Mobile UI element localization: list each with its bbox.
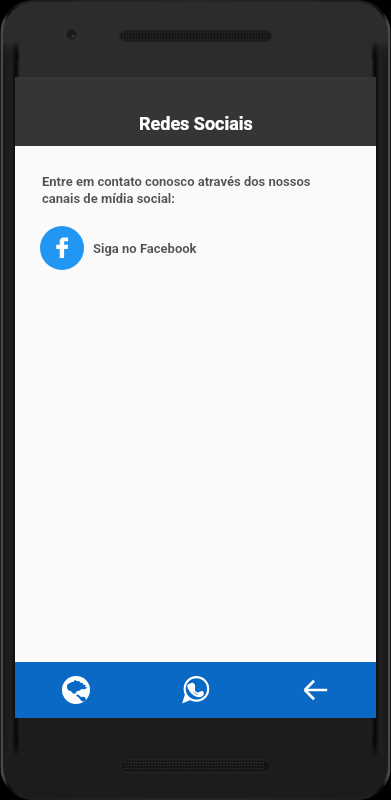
staticText: Entre em contato conosco através dos nos… [42, 174, 332, 207]
button[interactable]: Website [15, 662, 136, 718]
staticText: Redes Sociais [139, 113, 253, 134]
button[interactable]: Siga no Facebook [33, 221, 205, 275]
button[interactable]: Back [256, 662, 376, 718]
staticText: Siga no Facebook [93, 241, 197, 256]
button[interactable]: WhatsApp [136, 662, 256, 718]
